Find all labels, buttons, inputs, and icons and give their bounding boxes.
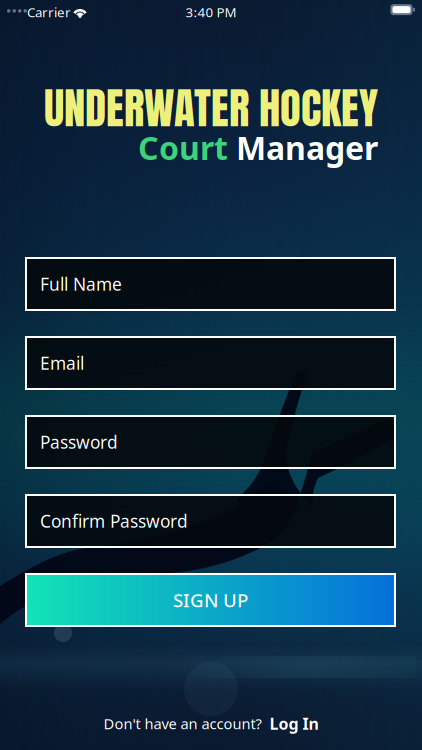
staticText: Court [138,126,228,169]
button[interactable]: SIGN UP [26,574,395,626]
button[interactable]: Full Name [26,258,395,310]
button[interactable]: Don't have an account? [103,709,318,738]
staticText: Manager [236,126,378,169]
staticText: Carrier [27,3,71,21]
staticText: 3:40 PM [185,3,236,21]
staticText: SIGN UP [173,588,248,612]
button[interactable]: Email [26,337,395,389]
staticText: Log In [269,713,318,734]
staticText: Don't have an account? [103,714,261,733]
staticText: Email [40,351,84,374]
button[interactable]: Confirm Password [26,495,395,547]
staticText: Full Name [40,272,122,295]
staticText: Password [40,430,118,453]
staticText: Confirm Password [40,509,188,532]
button[interactable]: Password [26,416,395,468]
staticText: UNDERWATER HOCKEY [44,76,378,140]
